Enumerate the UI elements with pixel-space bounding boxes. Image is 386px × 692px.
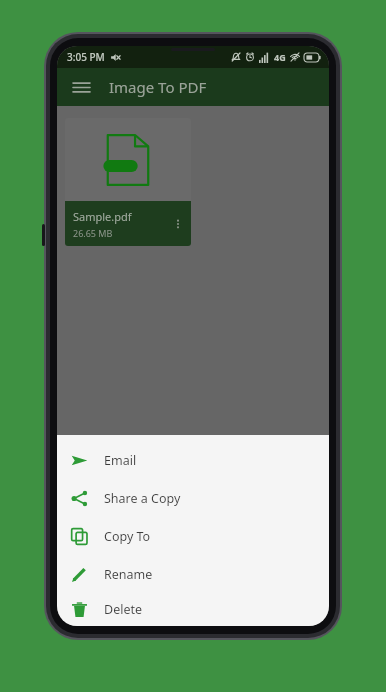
button[interactable]: More options: [167, 213, 189, 235]
button[interactable]: Share a Copy: [57, 479, 329, 517]
staticText: Share a Copy: [104, 490, 181, 507]
staticText: Copy To: [104, 528, 151, 545]
staticText: 3:05 PM: [67, 50, 105, 64]
staticText: Image To PDF: [109, 77, 207, 97]
button[interactable]: Sample.pdf: [65, 118, 191, 246]
staticText: Sample.pdf: [73, 209, 132, 224]
staticText: Email: [104, 452, 137, 469]
staticText: 4G: [274, 51, 286, 63]
button[interactable]: Open navigation menu: [65, 71, 97, 103]
staticText: Delete: [104, 601, 143, 618]
button[interactable]: Rename: [57, 555, 329, 593]
button[interactable]: Delete: [57, 593, 329, 626]
button[interactable]: Email: [57, 441, 329, 479]
staticText: 26.65 MB: [73, 227, 113, 239]
button[interactable]: Copy To: [57, 517, 329, 555]
staticText: Rename: [104, 566, 153, 583]
